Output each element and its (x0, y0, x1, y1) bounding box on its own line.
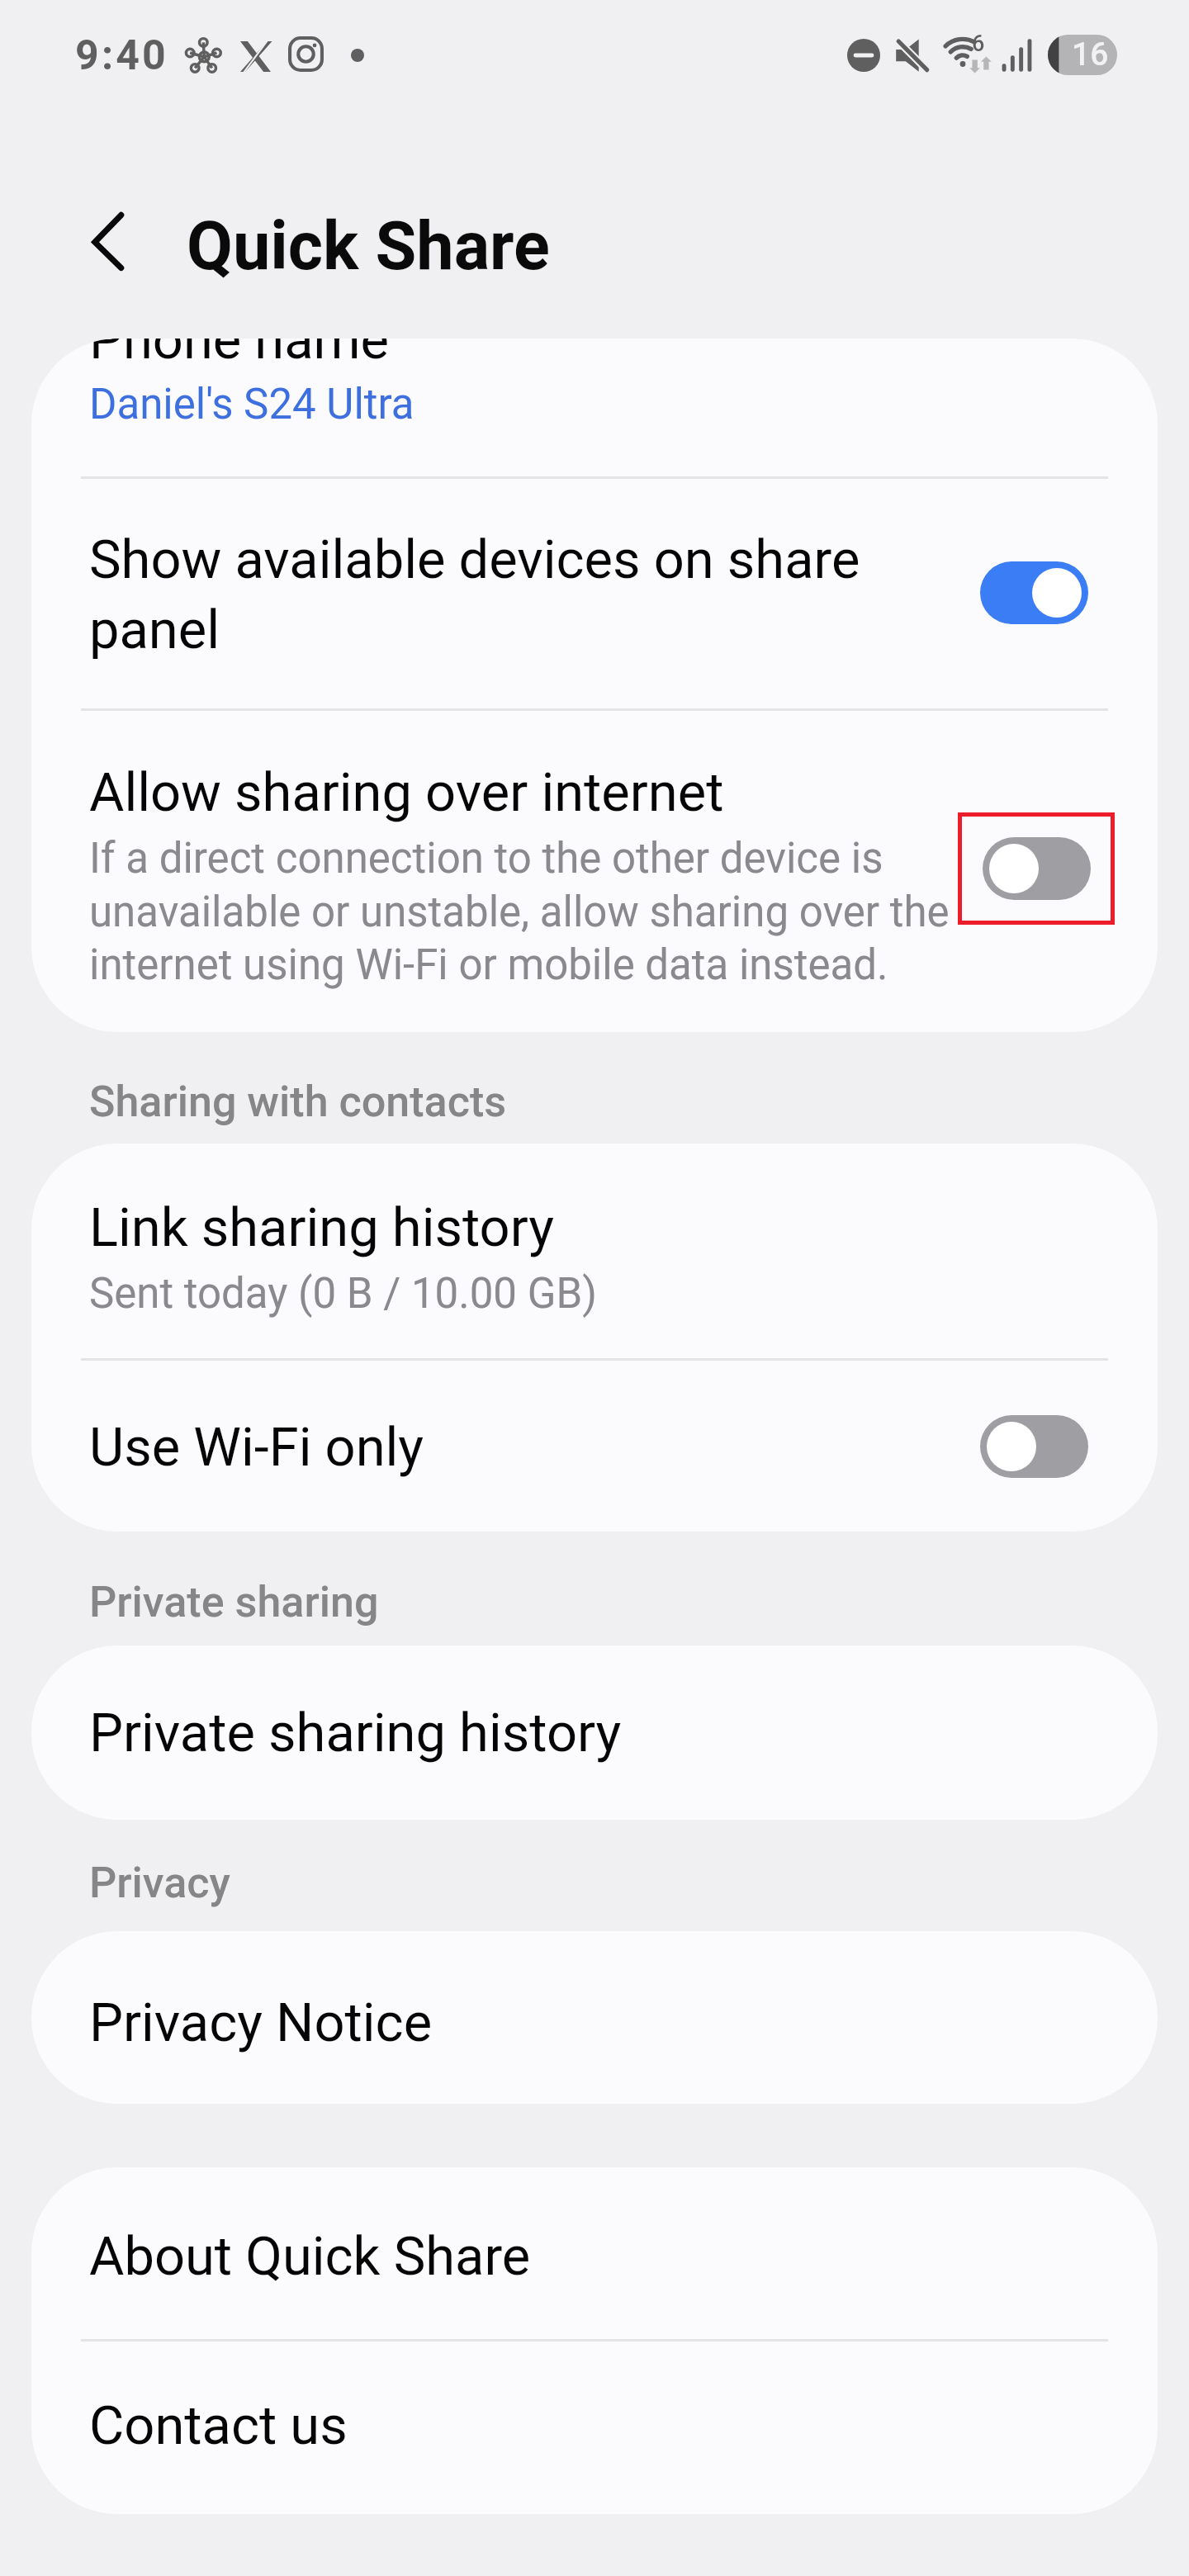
staticText: Privacy (89, 1858, 230, 1908)
button[interactable]: About Quick Share (31, 2167, 1158, 2339)
staticText: Allow sharing over internet (89, 761, 724, 824)
staticText: Quick Share (187, 207, 550, 286)
button[interactable]: Off (983, 837, 1091, 900)
staticText: Privacy Notice (89, 1991, 433, 2054)
staticText: Private sharing (89, 1577, 379, 1627)
button[interactable]: Allow sharing over internet (31, 711, 1158, 1032)
staticText: 9:40 (75, 31, 168, 80)
staticText: Show available devices on share panel (89, 528, 964, 661)
button[interactable]: Contact us (31, 2342, 1158, 2514)
button[interactable]: Navigate up (51, 197, 140, 286)
staticText: Phone name (89, 339, 390, 372)
staticText: Daniel's S24 Ultra (89, 380, 414, 429)
button[interactable]: On (980, 561, 1088, 624)
button[interactable]: Phone name (31, 339, 1158, 476)
staticText: Contact us (89, 2394, 348, 2457)
staticText: Link sharing history (89, 1196, 555, 1259)
button[interactable]: Link sharing history (31, 1144, 1158, 1358)
button[interactable]: Privacy Notice (31, 1931, 1158, 2104)
staticText: Sharing with contacts (89, 1077, 507, 1127)
staticText: Use Wi-Fi only (89, 1416, 424, 1479)
button[interactable]: Off (980, 1415, 1088, 1478)
staticText: Private sharing history (89, 1702, 622, 1764)
staticText: 6 (972, 31, 985, 57)
staticText: If a direct connection to the other devi… (89, 834, 964, 990)
button[interactable]: Show available devices on share panel (31, 479, 1158, 708)
button[interactable]: Use Wi-Fi only (31, 1361, 1158, 1532)
button[interactable]: Private sharing history (31, 1646, 1158, 1820)
staticText: 16 (1072, 36, 1109, 73)
staticText: About Quick Share (89, 2225, 531, 2288)
staticText: Sent today (0 B / 10.00 GB) (89, 1269, 597, 1319)
